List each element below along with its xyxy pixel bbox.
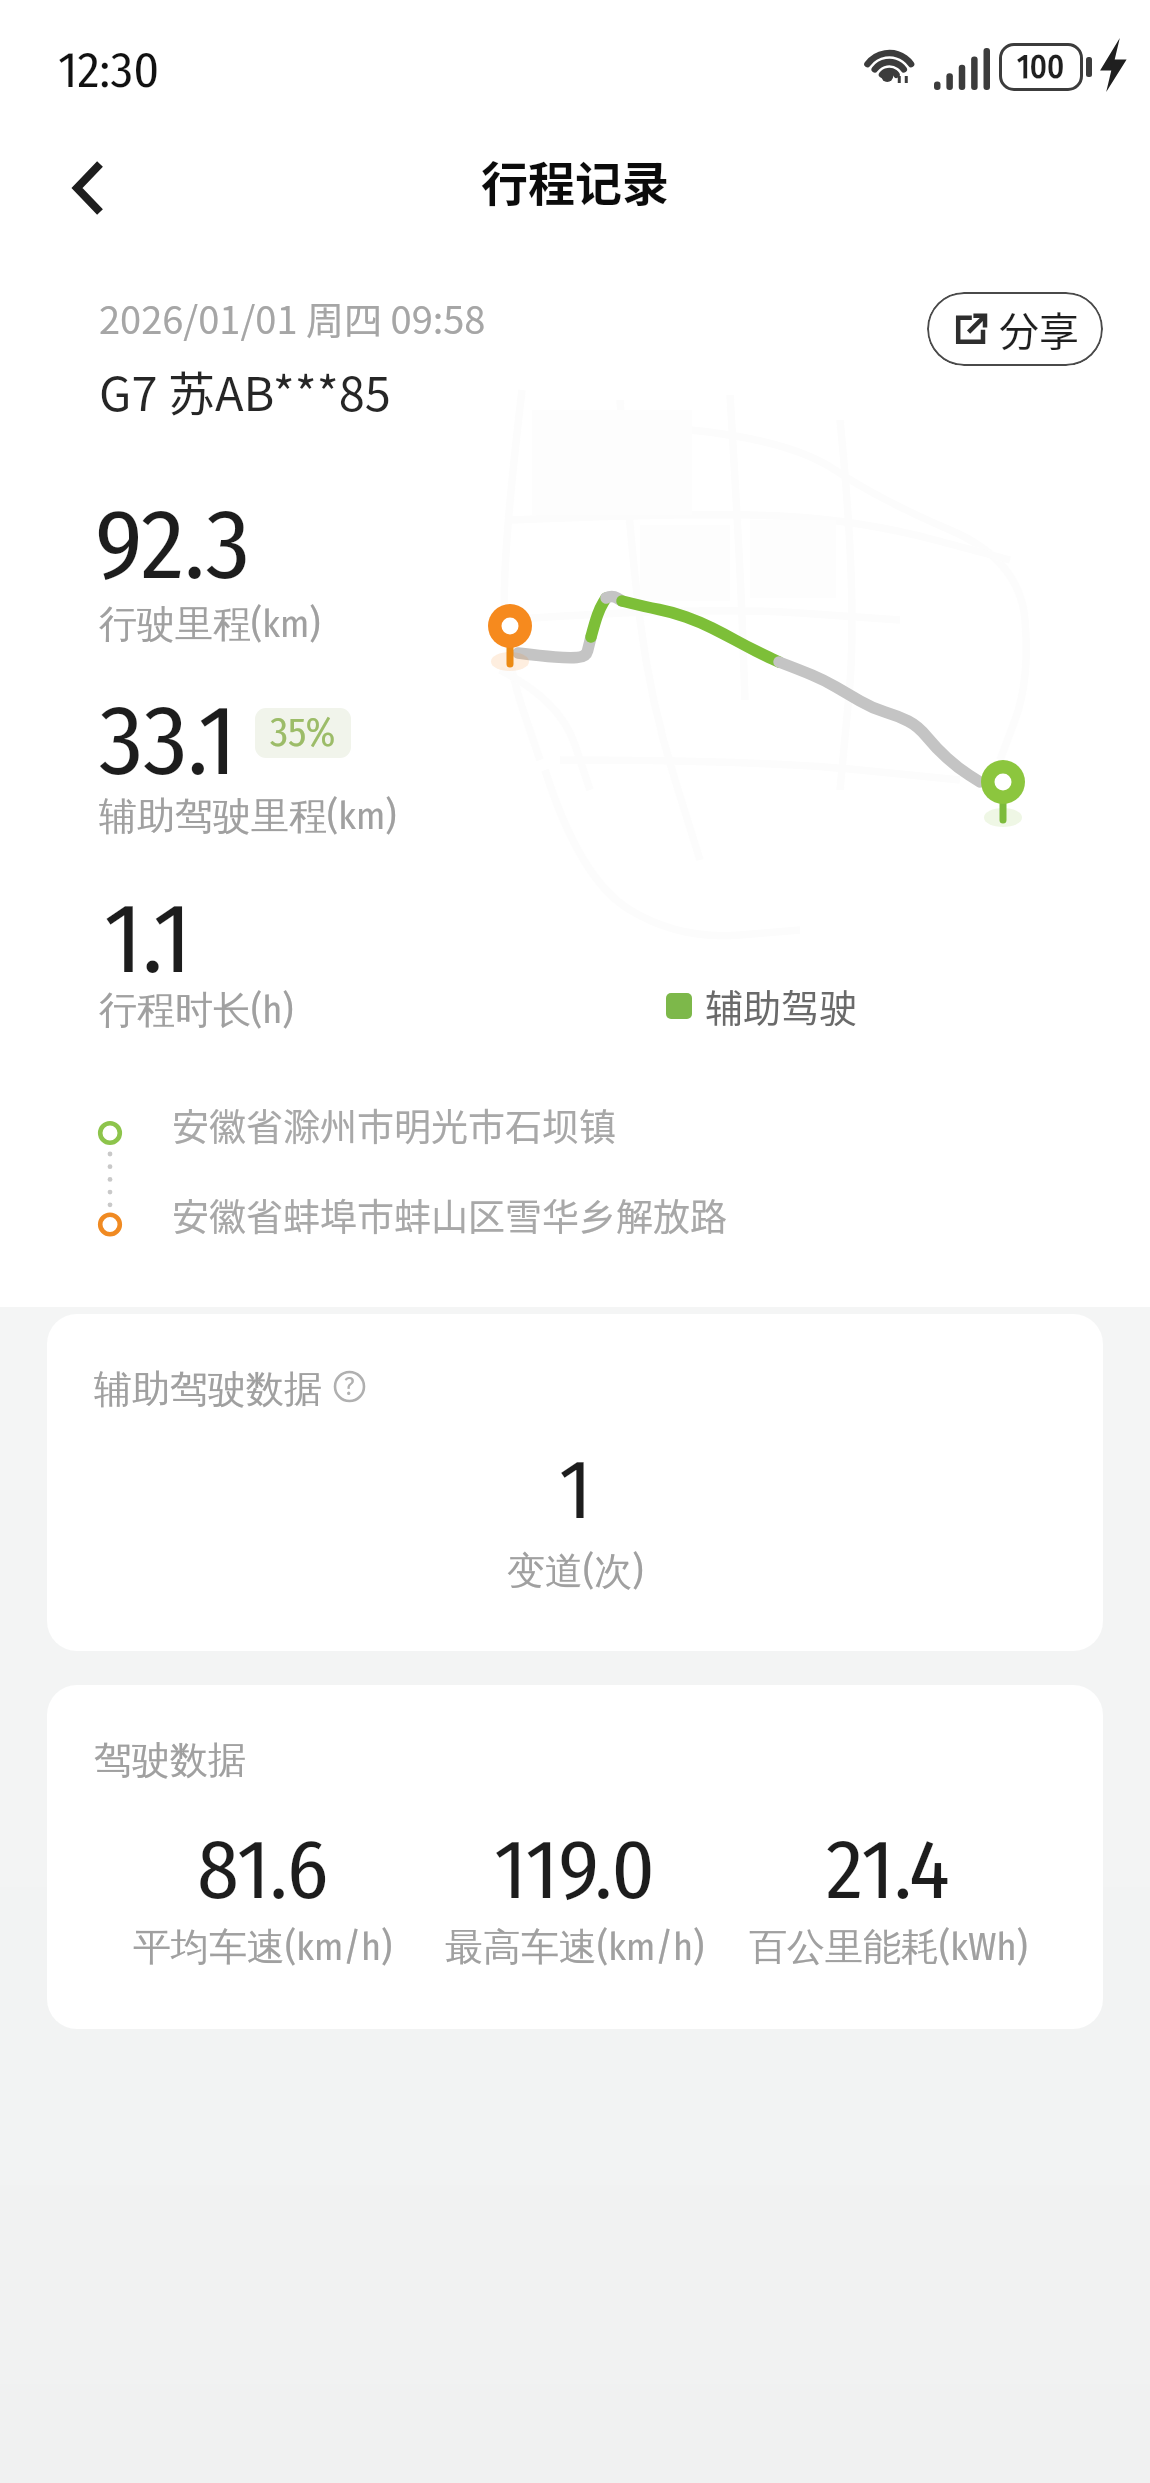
- staticText: 1: [559, 1439, 592, 1540]
- button[interactable]: 安徽省蚌埠市蚌山区雪华乡解放路: [60, 1188, 1090, 1260]
- button[interactable]: Back: [52, 144, 124, 216]
- staticText: 分享: [999, 300, 1079, 358]
- staticText: 2026/01/01 周四 09:58: [99, 290, 486, 345]
- staticText: 1.1: [104, 880, 192, 998]
- staticText: 81.6: [197, 1819, 329, 1920]
- button[interactable]: 辅助驾驶数据: [47, 1314, 1103, 1651]
- staticText: 92.3: [95, 486, 251, 604]
- staticText: 33.1: [99, 682, 237, 800]
- other: Wi-Fi: [862, 38, 920, 88]
- staticText: 行驶里程(km): [99, 600, 321, 648]
- staticText: 119.0: [494, 1819, 656, 1920]
- staticText: 12:30: [58, 40, 160, 100]
- staticText: 变道(次): [507, 1547, 644, 1595]
- staticText: 辅助驾驶: [705, 978, 858, 1033]
- staticText: 100: [1017, 47, 1065, 87]
- button[interactable]: 驾驶数据: [47, 1685, 1103, 2029]
- staticText: 最高车速(km/h): [445, 1923, 705, 1971]
- button[interactable]: 35%: [255, 708, 351, 758]
- staticText: G7 苏AB***85: [99, 356, 391, 424]
- staticText: 行程时长(h): [99, 986, 294, 1034]
- staticText: 辅助驾驶里程(km): [99, 792, 397, 840]
- staticText: 35%: [270, 709, 336, 757]
- staticText: 行程记录: [481, 146, 669, 214]
- staticText: 安徽省滁州市明光市石坝镇: [172, 1098, 616, 1152]
- staticText: 辅助驾驶数据: [94, 1365, 322, 1413]
- staticText: 驾驶数据: [94, 1736, 246, 1784]
- staticText: 百公里能耗(kWh): [749, 1923, 1028, 1971]
- button[interactable]: 分享: [927, 292, 1103, 366]
- staticText: 安徽省蚌埠市蚌山区雪华乡解放路: [172, 1188, 727, 1242]
- staticText: ?: [344, 1372, 355, 1402]
- other: Cellular signal: [934, 48, 990, 90]
- staticText: 平均车速(km/h): [133, 1923, 393, 1971]
- staticText: 21.4: [826, 1819, 950, 1920]
- button[interactable]: About assisted driving data: [333, 1370, 366, 1403]
- button[interactable]: 安徽省滁州市明光市石坝镇: [60, 1098, 1090, 1170]
